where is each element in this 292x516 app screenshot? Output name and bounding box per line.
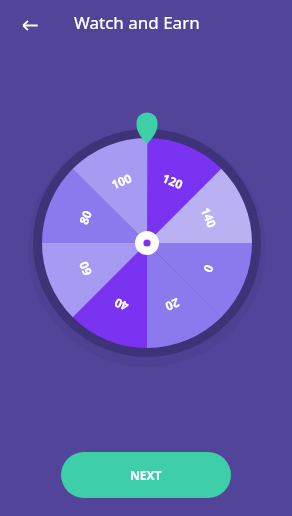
button[interactable]: Back [16, 11, 45, 40]
button[interactable]: Spin the wheel [0, 0, 292, 516]
button[interactable] [61, 452, 231, 498]
